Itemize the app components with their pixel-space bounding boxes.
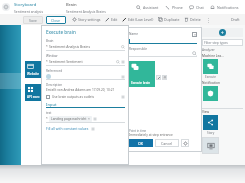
staticText: Sentiment Analysis Brains [49, 44, 121, 49]
staticText: Machine Lea… [202, 54, 224, 58]
staticText: Sentiment Sentiment [49, 59, 116, 64]
staticText: * [46, 117, 48, 121]
staticText: Duplicate [164, 17, 180, 22]
button[interactable]: Save [23, 16, 43, 24]
button[interactable]: Settings [181, 139, 189, 147]
button[interactable]: API exec [25, 84, 44, 101]
button[interactable]: Use brain outputs as outlets [46, 95, 125, 99]
staticText: Responsible [129, 47, 148, 51]
button[interactable]: View step [202, 137, 219, 154]
button[interactable]: Fill all with constant values [46, 126, 89, 131]
staticText: Phone [172, 5, 183, 10]
staticText: Storyboard [14, 2, 37, 8]
button[interactable]: ⋮ [206, 17, 211, 23]
button[interactable]: Execute brain [129, 61, 155, 87]
staticText: * [46, 45, 48, 49]
button[interactable]: Assistant [133, 5, 162, 10]
button[interactable]: Story [202, 115, 219, 135]
button[interactable] [202, 86, 219, 106]
button[interactable]: Edit (Low Level) [120, 17, 156, 22]
button[interactable]: Landing page.nachricht [49, 116, 92, 122]
staticText: Notifications [217, 5, 239, 10]
button[interactable]: Draft [231, 17, 240, 22]
staticText: text [46, 111, 52, 115]
staticText: * [46, 60, 48, 64]
button[interactable]: Delete node [162, 75, 167, 80]
staticText: Erstellt von Andrea Adams am 17.09.20, 1… [46, 88, 115, 92]
staticText: Use brain outputs as outlets [52, 95, 95, 99]
staticText: Sentiment analysis [14, 9, 44, 13]
staticText: Save [29, 18, 37, 23]
button[interactable]: Storyboard [14, 2, 66, 13]
staticText: Brain [66, 2, 77, 8]
staticText: Story [207, 131, 215, 135]
button[interactable]: Edit [103, 17, 120, 22]
staticText: Delete [190, 17, 201, 22]
staticText: Close [51, 18, 61, 23]
staticText: Filter step types [204, 41, 228, 45]
staticText: Referenced [46, 69, 62, 73]
button[interactable]: Website call [25, 61, 44, 78]
button[interactable]: Add step [219, 29, 226, 36]
staticText: Website call [27, 72, 42, 76]
staticText: Execute brain [131, 81, 151, 85]
staticText: Name [129, 32, 138, 36]
staticText: × [194, 32, 196, 37]
staticText: Notification [202, 81, 220, 85]
button[interactable]: Story settings [70, 17, 103, 22]
button[interactable]: Phone [162, 5, 186, 10]
staticText: API exec [27, 95, 40, 99]
button[interactable]: Analyzer [202, 48, 215, 52]
staticText: + [221, 30, 224, 36]
staticText: Input [46, 102, 57, 107]
button[interactable]: Brain [66, 2, 122, 13]
staticText: Edit [111, 17, 118, 22]
staticText: View [202, 110, 210, 114]
button[interactable]: OK [129, 139, 153, 147]
button[interactable]: Menu [2, 3, 10, 11]
staticText: Description [46, 83, 63, 87]
button[interactable]: Close [192, 32, 197, 37]
staticText: × [88, 117, 90, 121]
staticText: Window [46, 54, 58, 58]
button[interactable]: Notifications [207, 5, 242, 10]
staticText: OK [138, 141, 144, 146]
button[interactable]: Edit node [156, 75, 161, 80]
staticText: Cancel [161, 141, 173, 146]
button[interactable]: Chat [186, 5, 207, 10]
button[interactable]: Filter step types [202, 39, 243, 46]
staticText: Story settings [78, 17, 101, 22]
staticText: Sentiment Analysis Brains [66, 9, 106, 13]
staticText: Landing page.nachricht [51, 117, 87, 121]
button[interactable]: Delete [182, 17, 203, 22]
staticText: Immediately at step entrance [129, 133, 173, 137]
staticText: Assistant [143, 5, 159, 10]
button[interactable]: Cancel [155, 139, 179, 147]
button[interactable]: Execute brain [202, 59, 219, 79]
staticText: Edit (Low Level) [128, 17, 154, 22]
button[interactable]: Execute brain [46, 29, 76, 35]
button[interactable]: Duplicate [156, 17, 182, 22]
staticText: Brain [46, 39, 54, 43]
staticText: Chat [196, 5, 204, 10]
button[interactable]: Close [46, 16, 66, 24]
staticText: Point in time [129, 129, 147, 133]
staticText: Execute brain [205, 75, 216, 79]
